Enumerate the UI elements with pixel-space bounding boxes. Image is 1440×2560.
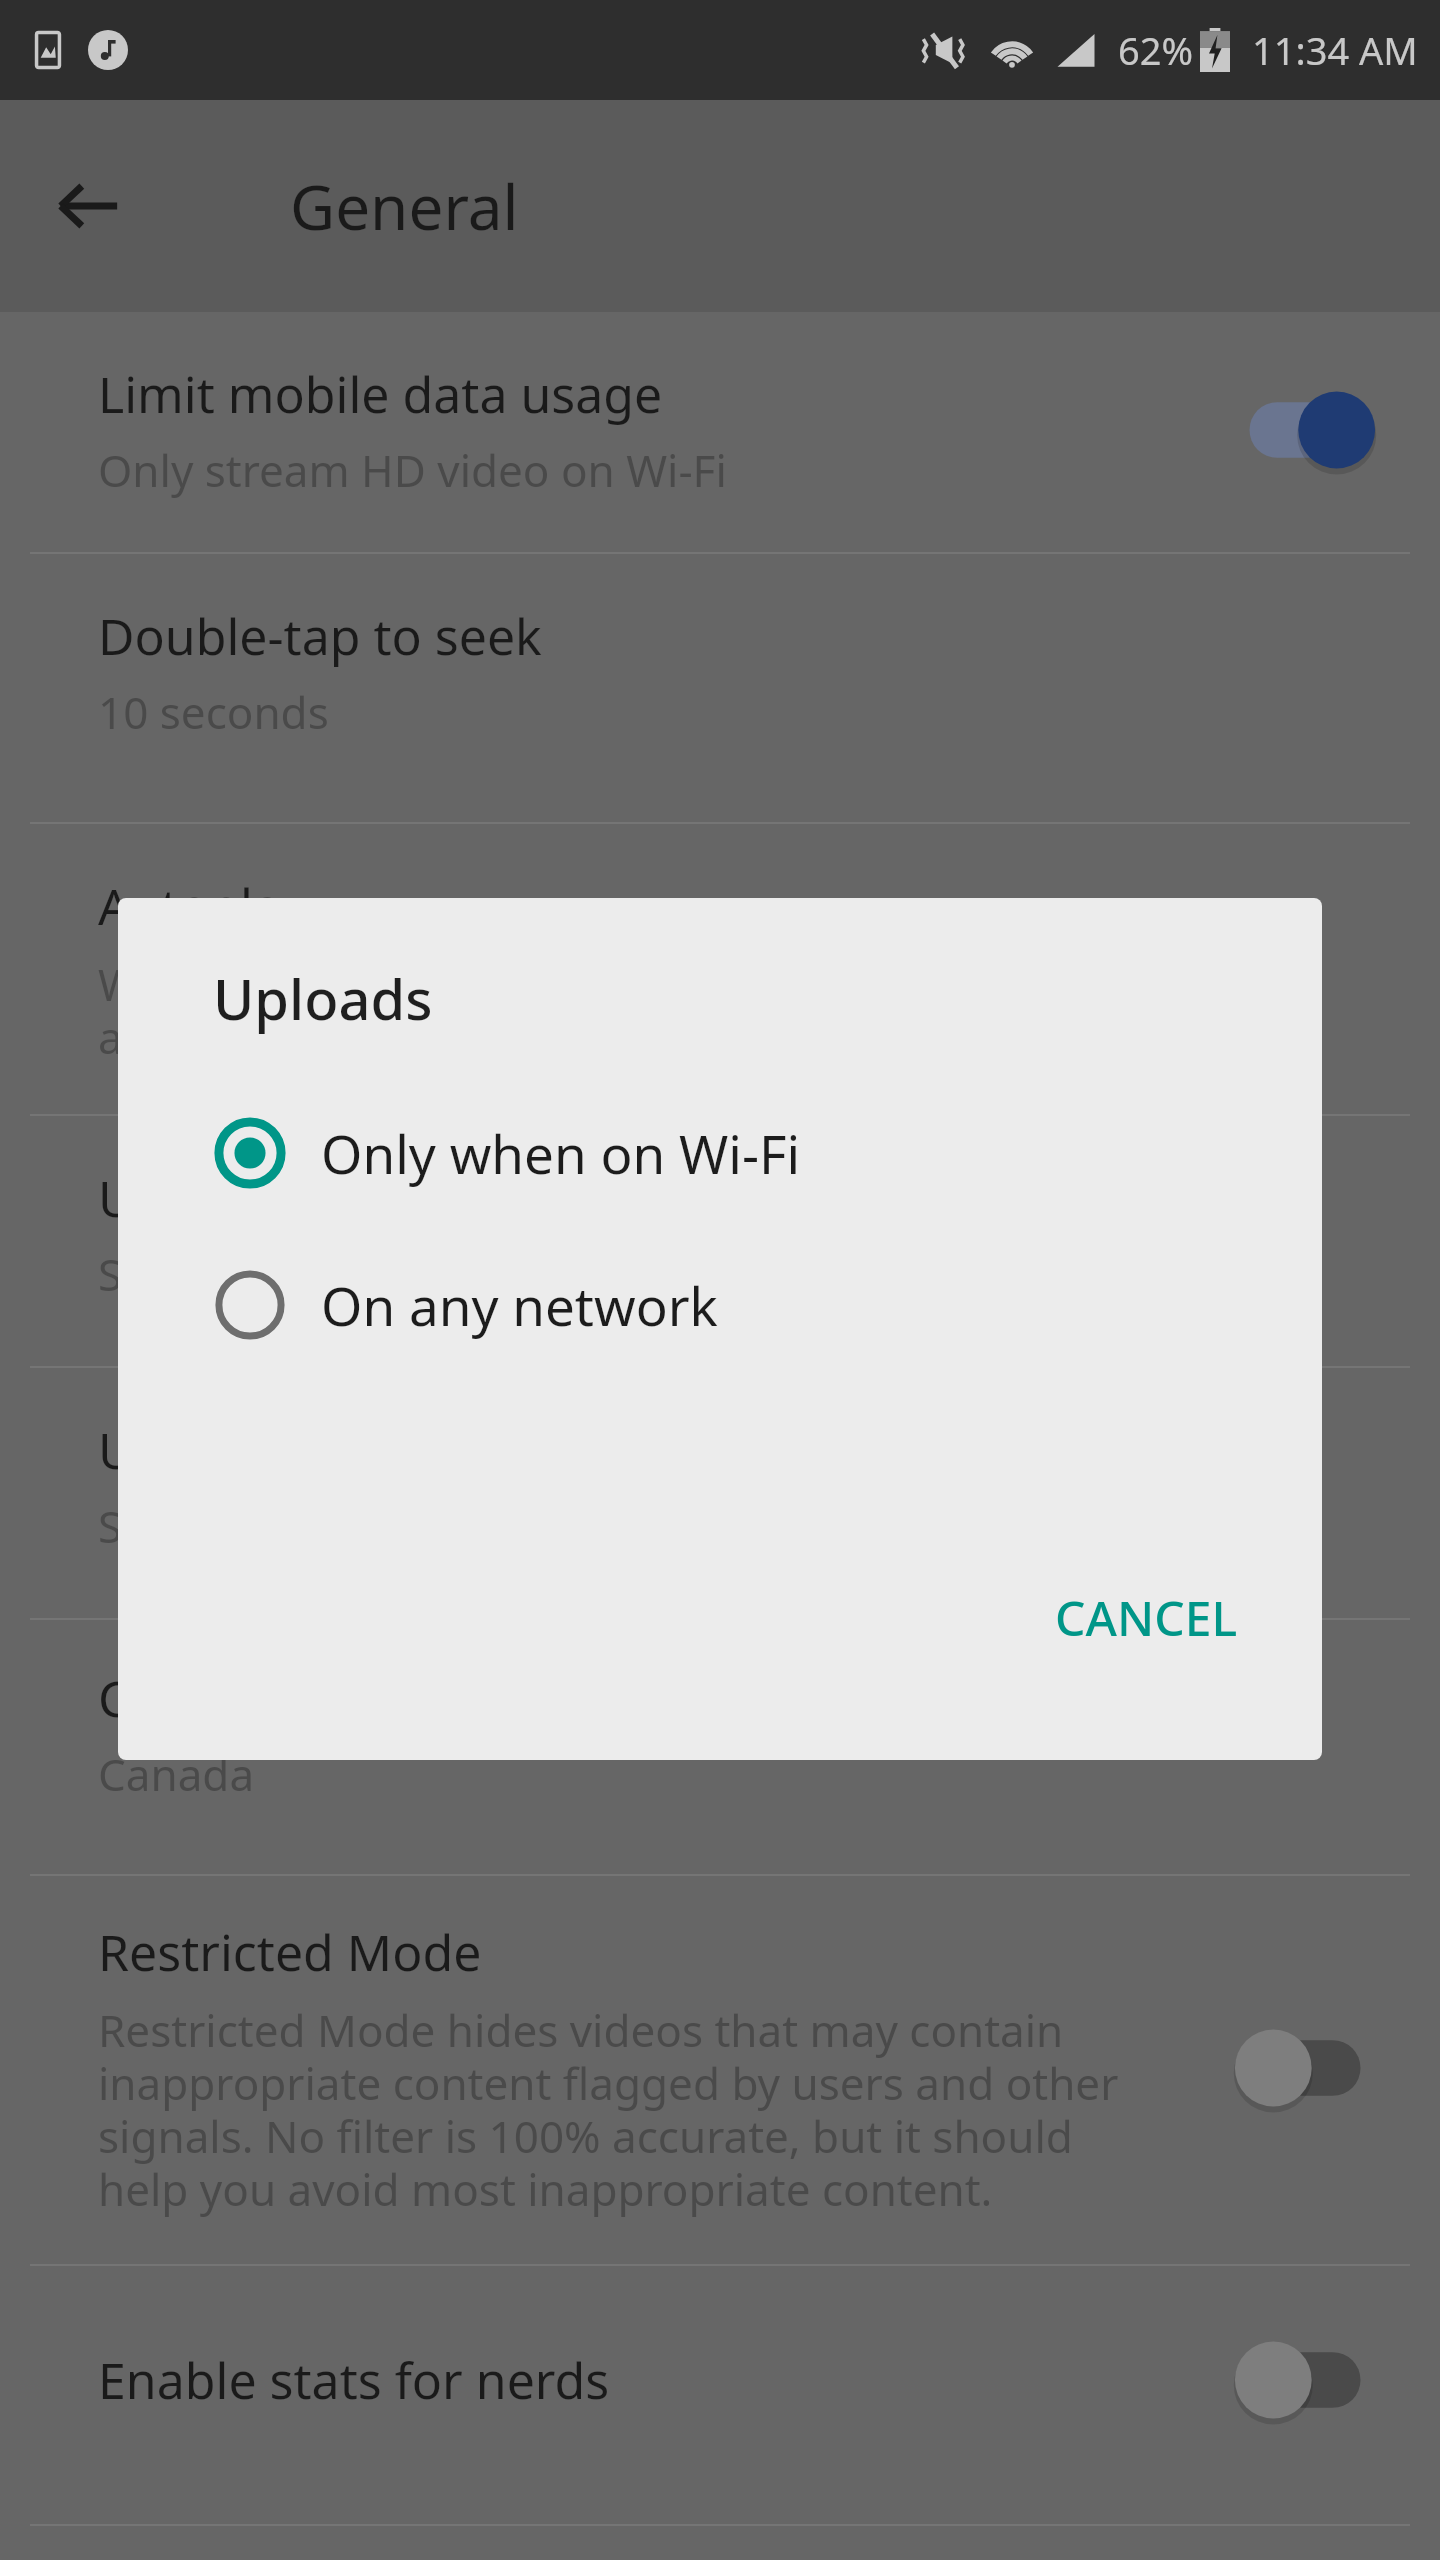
staticText: When you finish a video, another plays a…: [98, 954, 897, 1066]
button[interactable]: Uploads: [0, 1116, 1440, 1366]
button[interactable]: Restricted Mode: [0, 1876, 1440, 2264]
button[interactable]: Uploads: [0, 1368, 1440, 1618]
staticText: 62%: [1118, 24, 1194, 76]
button[interactable]: On any network: [118, 1254, 1322, 1356]
button[interactable]: Autoplay: [0, 824, 1440, 1114]
staticText: On any network: [321, 1269, 718, 1341]
staticText: Surface: [98, 1496, 254, 1556]
staticText: Content location: [98, 1664, 487, 1732]
button[interactable]: Back: [40, 158, 136, 254]
button[interactable]: Content location: [0, 1620, 1440, 1874]
button[interactable]: Only when on Wi-Fi: [118, 1102, 1322, 1204]
staticText: Uploads: [98, 1164, 292, 1232]
staticText: Enable stats for nerds: [98, 2346, 610, 2414]
staticText: Only stream HD video on Wi-Fi: [98, 440, 727, 500]
staticText: Uploads: [213, 960, 433, 1036]
button[interactable]: Toggle on: [1230, 382, 1380, 478]
staticText: Surface: [98, 1244, 254, 1304]
button[interactable]: Double-tap to seek: [0, 554, 1440, 822]
staticText: Limit mobile data usage: [98, 360, 663, 428]
staticText: Uploads: [98, 1416, 292, 1484]
staticText: Restricted Mode: [98, 1918, 482, 1986]
button[interactable]: Limit mobile data usage: [0, 312, 1440, 552]
staticText: 11:34 AM: [1252, 24, 1418, 76]
button[interactable]: CANCEL: [1023, 1563, 1270, 1672]
staticText: CANCEL: [1055, 1585, 1238, 1650]
staticText: Autoplay: [98, 872, 307, 940]
staticText: 10 seconds: [98, 682, 329, 742]
staticText: Double-tap to seek: [98, 602, 542, 670]
staticText: Restricted Mode hides videos that may co…: [98, 2000, 1119, 2218]
button[interactable]: Toggle off: [1230, 2020, 1380, 2116]
staticText: General: [290, 164, 519, 248]
staticText: Canada: [98, 1744, 255, 1804]
button[interactable]: Toggle off: [1230, 2332, 1380, 2428]
button[interactable]: Enable stats for nerds: [0, 2266, 1440, 2524]
staticText: Only when on Wi-Fi: [321, 1117, 801, 1189]
